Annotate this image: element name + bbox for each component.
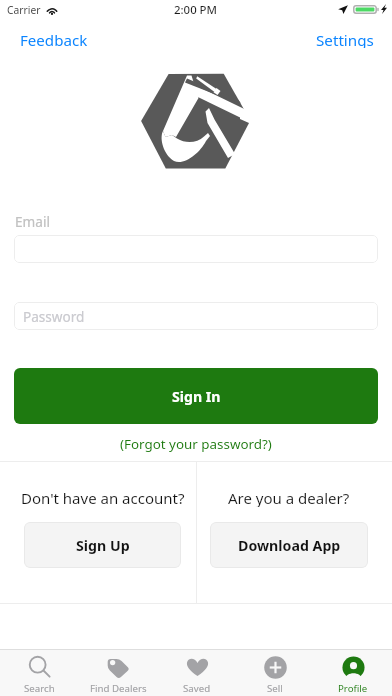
button[interactable]: Search <box>0 650 79 696</box>
staticText: Sell <box>267 682 283 695</box>
button[interactable]: Find Dealers <box>79 650 158 696</box>
staticText: Profile <box>338 682 368 695</box>
button[interactable]: Sign Up <box>24 522 181 568</box>
staticText: 2:00 PM <box>174 2 218 18</box>
button[interactable]: Profile <box>314 650 392 696</box>
staticText: Password <box>23 307 85 326</box>
staticText: Find Dealers <box>90 682 147 695</box>
button[interactable]: Sign In <box>14 368 378 424</box>
button[interactable]: Saved <box>158 650 236 696</box>
other: Profile <box>342 656 365 679</box>
staticText: Don't have an account? <box>21 488 185 507</box>
staticText: Feedback <box>20 30 88 48</box>
staticText: Email <box>15 212 50 231</box>
staticText: Saved <box>183 682 211 695</box>
staticText: Search <box>24 682 55 695</box>
staticText: Download App <box>238 536 341 555</box>
staticText: Are you a dealer? <box>228 488 350 507</box>
button[interactable]: Password <box>14 302 378 330</box>
button[interactable]: Sell <box>236 650 314 696</box>
button[interactable]: (Forgot your password?) <box>112 434 280 454</box>
other: Saved <box>186 656 209 679</box>
other: Sell <box>264 656 287 679</box>
staticText: Settings <box>316 30 374 48</box>
staticText: Sign In <box>172 387 221 406</box>
staticText: Carrier <box>7 3 41 17</box>
other: Find Dealers <box>107 656 130 679</box>
button[interactable]: Download App <box>210 522 368 568</box>
button[interactable]: Feedback <box>0 28 108 50</box>
button[interactable] <box>14 235 378 263</box>
staticText: (Forgot your password?) <box>120 435 272 453</box>
other: Search <box>28 656 51 679</box>
staticText: Sign Up <box>76 536 130 555</box>
button[interactable]: Settings <box>296 28 392 50</box>
